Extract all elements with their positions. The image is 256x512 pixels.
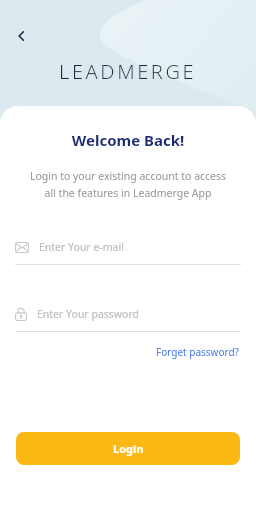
staticText: Welcome Back!	[0, 130, 256, 150]
button[interactable]: Password field	[15, 303, 241, 332]
button[interactable]: Back	[8, 22, 36, 50]
staticText: Enter Your e-mail	[39, 240, 124, 254]
staticText: Forget password?	[156, 345, 239, 359]
button[interactable]: Forget password?	[154, 342, 241, 362]
staticText: LEADMERGE	[59, 58, 197, 85]
button[interactable]: Email field	[15, 236, 241, 265]
staticText: Enter Your password	[37, 307, 140, 321]
staticText: Login to your existing account to access…	[16, 169, 240, 200]
button[interactable]: Login	[16, 432, 240, 465]
staticText: Login	[113, 441, 144, 456]
